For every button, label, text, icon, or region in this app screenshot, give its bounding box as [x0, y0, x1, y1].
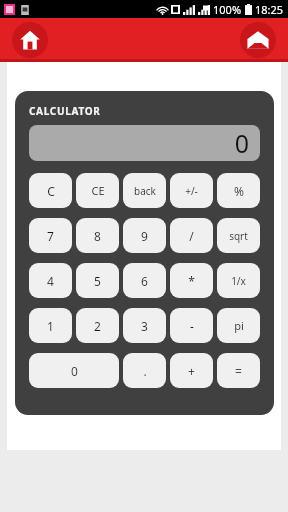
staticText: +/-: [185, 184, 198, 198]
staticText: back: [134, 184, 156, 198]
button[interactable]: 2: [76, 308, 119, 343]
staticText: CE: [91, 183, 105, 198]
staticText: %: [234, 183, 244, 199]
button[interactable]: 1/x: [217, 263, 260, 298]
staticText: 5: [94, 273, 101, 289]
staticText: 8: [94, 228, 101, 244]
staticText: 100%: [213, 2, 242, 17]
staticText: 0: [71, 363, 78, 379]
staticText: 3: [141, 318, 148, 334]
staticText: pi: [234, 318, 244, 333]
button[interactable]: .: [123, 353, 166, 388]
button[interactable]: +: [170, 353, 213, 388]
staticText: C: [47, 183, 55, 199]
staticText: 1/x: [231, 274, 246, 288]
staticText: 7: [47, 228, 54, 244]
staticText: 18:25: [255, 2, 284, 17]
staticText: -: [190, 318, 194, 334]
button[interactable]: -: [170, 308, 213, 343]
staticText: /: [189, 228, 194, 244]
button[interactable]: 9: [123, 218, 166, 253]
button[interactable]: 6: [123, 263, 166, 298]
button[interactable]: sqrt: [217, 218, 260, 253]
button[interactable]: back: [123, 173, 166, 208]
button[interactable]: CE: [76, 173, 119, 208]
button[interactable]: =: [217, 353, 260, 388]
button[interactable]: *: [170, 263, 213, 298]
button[interactable]: 0: [29, 353, 119, 388]
button[interactable]: 4: [29, 263, 72, 298]
button[interactable]: 5: [76, 263, 119, 298]
staticText: CALCULATOR: [29, 104, 101, 118]
staticText: +: [188, 363, 195, 379]
staticText: sqrt: [229, 229, 248, 243]
button[interactable]: C: [29, 173, 72, 208]
staticText: 0: [234, 126, 249, 160]
button[interactable]: %: [217, 173, 260, 208]
button[interactable]: 0: [29, 125, 260, 161]
button[interactable]: pi: [217, 308, 260, 343]
staticText: 2: [94, 318, 101, 334]
staticText: 1: [47, 318, 54, 334]
staticText: 6: [141, 273, 148, 289]
staticText: .: [143, 363, 147, 379]
button[interactable]: 8: [76, 218, 119, 253]
button[interactable]: Home: [12, 22, 48, 58]
staticText: *: [188, 273, 195, 289]
staticText: =: [235, 363, 242, 379]
button[interactable]: Mail: [240, 22, 276, 58]
button[interactable]: 1: [29, 308, 72, 343]
staticText: 4: [47, 273, 54, 289]
button[interactable]: +/-: [170, 173, 213, 208]
button[interactable]: 7: [29, 218, 72, 253]
button[interactable]: /: [170, 218, 213, 253]
staticText: 9: [141, 228, 148, 244]
button[interactable]: 3: [123, 308, 166, 343]
